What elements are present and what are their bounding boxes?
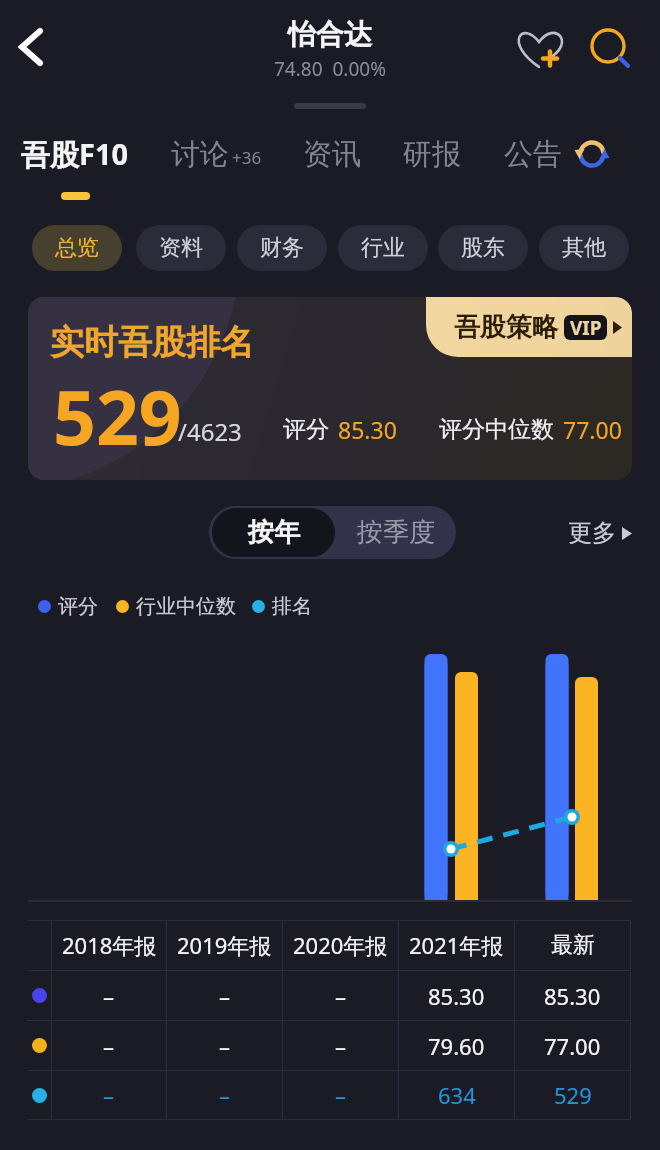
staticText: – <box>335 1031 347 1061</box>
staticText: 排名 <box>272 594 312 619</box>
staticText: 财务 <box>260 234 304 262</box>
staticText: – <box>219 981 231 1011</box>
button[interactable]: 吾股策略 <box>28 297 632 480</box>
staticText: 2020年报 <box>293 930 388 960</box>
staticText: 85.30 <box>544 981 601 1011</box>
staticText: 529 <box>554 1080 592 1110</box>
button[interactable]: 研报 <box>403 136 461 173</box>
staticText: 行业 <box>361 234 405 262</box>
staticText: 按年 <box>248 516 300 549</box>
button[interactable]: Search <box>585 21 635 71</box>
button[interactable]: Refresh <box>576 138 608 170</box>
button[interactable]: 公告 <box>504 136 562 173</box>
staticText: – <box>335 981 347 1011</box>
staticText: +36 <box>232 146 262 169</box>
staticText: 股东 <box>461 234 505 262</box>
staticText: 公告 <box>504 136 562 173</box>
button[interactable]: 按季度 <box>335 506 456 559</box>
staticText: 评分 <box>283 415 329 444</box>
staticText: – <box>335 1080 347 1110</box>
button[interactable]: 财务 <box>237 225 327 271</box>
staticText: 其他 <box>562 234 606 262</box>
staticText: 吾股F10 <box>21 134 129 174</box>
staticText: 总览 <box>55 234 99 262</box>
staticText: 2019年报 <box>177 930 272 960</box>
button[interactable]: 行业 <box>338 225 428 271</box>
staticText: 2021年报 <box>409 930 504 960</box>
staticText: 评分 <box>58 594 98 619</box>
staticText: 资料 <box>159 234 203 262</box>
staticText: 行业中位数 <box>136 594 236 619</box>
staticText: 实时吾股排名 <box>50 321 254 364</box>
button[interactable]: 资料 <box>136 225 226 271</box>
staticText: – <box>103 981 115 1011</box>
button[interactable]: Add to favorites <box>514 21 564 71</box>
staticText: – <box>103 1031 115 1061</box>
staticText: 85.30 <box>428 981 485 1011</box>
staticText: VIP <box>570 315 602 340</box>
staticText: 怡合达 <box>288 17 372 52</box>
button[interactable]: 总览 <box>32 225 122 271</box>
staticText: 最新 <box>551 931 595 959</box>
staticText: 吾股策略 <box>454 311 558 344</box>
staticText: 更多 <box>568 518 616 548</box>
staticText: – <box>219 1080 231 1110</box>
button[interactable]: 按年 <box>212 508 335 557</box>
staticText: 评分中位数 <box>439 415 554 444</box>
staticText: /4623 <box>178 415 242 448</box>
staticText: 529 <box>53 365 182 467</box>
button[interactable]: 吾股F10 <box>21 134 129 200</box>
staticText: 77.00 <box>544 1031 601 1061</box>
staticText: 资讯 <box>303 136 361 173</box>
staticText: 79.60 <box>428 1031 485 1061</box>
staticText: 77.00 <box>563 414 622 445</box>
button[interactable]: 其他 <box>539 225 629 271</box>
staticText: 74.80 0.00% <box>274 56 386 82</box>
staticText: – <box>103 1080 115 1110</box>
button[interactable]: Back <box>6 22 56 72</box>
button[interactable]: 更多 <box>568 518 632 548</box>
button[interactable]: 资讯 <box>303 136 361 173</box>
staticText: 讨论 <box>171 136 229 173</box>
staticText: 2018年报 <box>62 930 157 960</box>
staticText: 按季度 <box>357 516 435 549</box>
staticText: 研报 <box>403 136 461 173</box>
button[interactable]: 吾股策略 <box>426 297 632 357</box>
button[interactable]: 讨论 <box>171 136 259 173</box>
staticText: – <box>219 1031 231 1061</box>
staticText: 634 <box>438 1080 476 1110</box>
button[interactable]: 股东 <box>438 225 528 271</box>
staticText: 85.30 <box>338 414 397 445</box>
